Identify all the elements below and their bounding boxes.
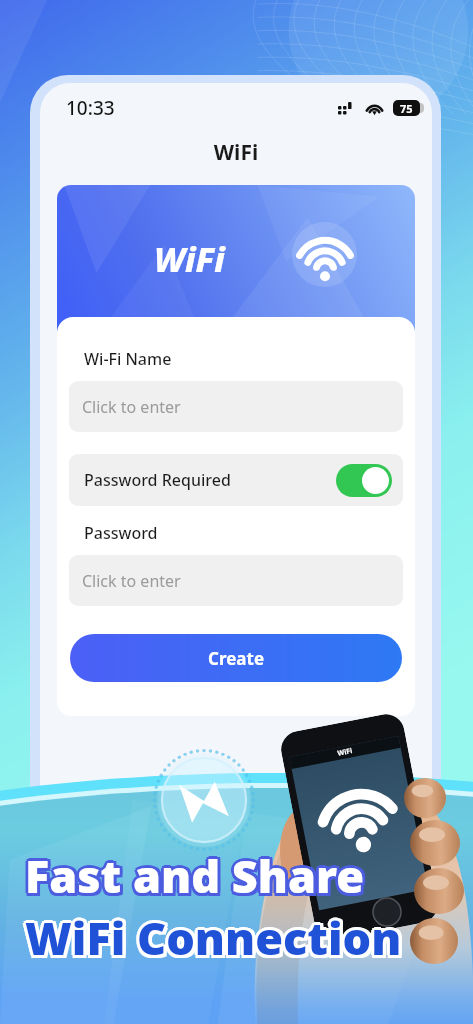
staticText: Fast and Share xyxy=(25,842,364,903)
staticText: Fast and Share xyxy=(28,845,367,906)
staticText: WiFi Connection xyxy=(23,910,400,971)
staticText: Wi-Fi Name xyxy=(84,348,172,370)
button[interactable]: Click to enter xyxy=(69,555,403,606)
button[interactable]: Password Required xyxy=(69,454,403,506)
staticText: Click to enter xyxy=(82,570,181,592)
staticText: WiFi Connection xyxy=(23,905,400,966)
staticText: WiFi Connection xyxy=(22,907,399,968)
staticText: Fast and Share xyxy=(28,848,367,909)
staticText: Fast and Share xyxy=(25,845,364,906)
staticText: WiFi xyxy=(40,138,432,167)
staticText: Fast and Share xyxy=(23,848,362,909)
staticText: 10:33 xyxy=(66,95,115,121)
button[interactable]: Create xyxy=(70,634,402,682)
staticText: Click to enter xyxy=(82,396,181,418)
staticText: Create xyxy=(208,647,265,670)
staticText: Fast and Share xyxy=(23,843,362,904)
staticText: Password xyxy=(84,522,158,544)
staticText: WiFi Connection xyxy=(28,907,405,968)
staticText: WiFi Connection xyxy=(25,904,402,965)
button[interactable]: Click to enter xyxy=(69,381,403,432)
staticText: WiFi Connection xyxy=(25,907,402,968)
staticText: WiFi Connection xyxy=(25,910,402,971)
staticText: Password Required xyxy=(84,469,231,491)
staticText: WiFi Connection xyxy=(28,905,405,966)
staticText: Fast and Share xyxy=(25,848,364,909)
staticText: WiFi xyxy=(154,236,225,282)
staticText: WiFi Connection xyxy=(28,910,405,971)
staticText: 75 xyxy=(400,101,413,116)
staticText: Fast and Share xyxy=(28,843,367,904)
staticText: WiFi xyxy=(337,746,353,759)
staticText: Fast and Share xyxy=(22,845,361,906)
